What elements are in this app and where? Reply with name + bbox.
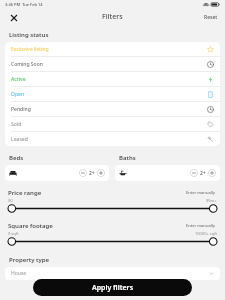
staticText: Reset xyxy=(204,14,218,21)
button[interactable]: Close xyxy=(7,11,20,24)
staticText: Sold xyxy=(11,121,22,128)
button[interactable]: Apply filters xyxy=(33,279,192,296)
button[interactable]: Exclusive listing xyxy=(5,42,220,56)
staticText: Pending xyxy=(11,106,31,113)
staticText: $0 xyxy=(8,198,13,203)
staticText: Enter manually xyxy=(186,190,215,195)
staticText: 3:46 PM Tue Feb 14 xyxy=(5,2,43,7)
staticText: Enter manually xyxy=(186,223,215,228)
button[interactable]: Enter manually xyxy=(184,188,217,197)
staticText: Baths xyxy=(119,154,136,162)
button[interactable]: Open xyxy=(5,87,220,101)
staticText: Exclusive listing xyxy=(11,46,49,53)
button[interactable]: Increase xyxy=(97,169,105,177)
staticText: Coming Soon xyxy=(11,61,43,68)
staticText: Leased xyxy=(11,136,28,143)
staticText: 2+ xyxy=(200,170,206,177)
staticText: Active xyxy=(11,76,26,83)
staticText: Property type xyxy=(9,256,50,264)
button[interactable]: Active xyxy=(5,72,220,86)
button[interactable]: Decrease xyxy=(190,169,198,177)
button[interactable]: House xyxy=(5,267,220,280)
button[interactable]: Coming Soon xyxy=(5,57,220,71)
staticText: Apply filters xyxy=(92,283,134,293)
staticText: Listing status xyxy=(9,31,49,39)
staticText: $5m+ xyxy=(206,198,217,203)
staticText: Open xyxy=(11,91,25,98)
button[interactable]: Sold xyxy=(5,117,220,131)
button[interactable]: Reset xyxy=(197,11,225,24)
staticText: Beds xyxy=(9,154,24,162)
button[interactable]: Pending xyxy=(5,102,220,116)
staticText: 0 sqft xyxy=(8,231,19,236)
staticText: Filters xyxy=(102,12,123,22)
button[interactable]: Enter manually xyxy=(184,221,217,230)
staticText: 2+ xyxy=(89,170,95,177)
staticText: House xyxy=(11,270,27,277)
staticText: Square footage xyxy=(8,222,53,230)
button[interactable]: Increase xyxy=(208,169,216,177)
button[interactable]: Leased xyxy=(5,132,220,146)
button[interactable]: Decrease xyxy=(79,169,87,177)
staticText: 10000+ sqft xyxy=(195,231,217,236)
staticText: Price range xyxy=(8,189,42,197)
